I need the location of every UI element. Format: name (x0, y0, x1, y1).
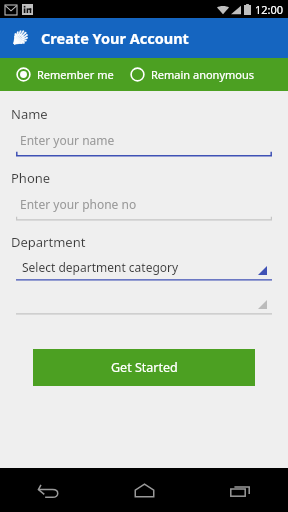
staticText: Remember me (37, 67, 114, 82)
staticText: Name (11, 105, 48, 123)
button[interactable]: Recent apps (192, 468, 288, 512)
staticText: Department (11, 233, 86, 251)
button[interactable]: Remember me (14, 64, 116, 85)
button[interactable]: Home (96, 468, 192, 512)
staticText: Select department category (22, 259, 179, 275)
button[interactable]: Enter your phone no (16, 196, 272, 221)
staticText: Enter your phone no (20, 196, 137, 212)
staticText: Remain anonymous (151, 67, 255, 82)
button[interactable]: Select option (16, 294, 272, 315)
button[interactable]: Get Started (33, 349, 255, 386)
staticText: 12:00 (255, 2, 284, 17)
staticText: Create Your Account (41, 28, 189, 48)
staticText: Enter your name (20, 132, 115, 148)
staticText: Phone (11, 169, 51, 187)
staticText: Get Started (111, 359, 178, 376)
button[interactable]: Back (0, 468, 96, 512)
button[interactable]: Select department category (16, 259, 272, 281)
button[interactable]: Enter your name (16, 132, 272, 157)
button[interactable]: Remain anonymous (128, 64, 257, 85)
